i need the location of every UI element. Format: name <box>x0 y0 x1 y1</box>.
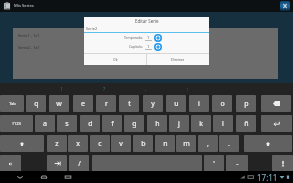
staticText: Temporada: <box>124 35 143 40</box>
button[interactable]: p <box>236 95 256 112</box>
button[interactable]: t <box>119 95 139 112</box>
button[interactable]: / <box>69 155 89 172</box>
button[interactable]: Tab <box>0 95 24 112</box>
button[interactable]: Increment Capítulo: <box>154 43 162 51</box>
staticText: q <box>34 99 39 109</box>
staticText: v <box>119 139 123 149</box>
button[interactable]: . <box>219 135 239 152</box>
button[interactable]: f <box>102 115 122 132</box>
staticText: n <box>163 139 168 149</box>
button[interactable]: ñ <box>236 115 256 132</box>
button[interactable]: Tab <box>47 155 67 172</box>
button[interactable]: n <box>155 135 175 152</box>
button[interactable]: ?123 <box>0 115 33 132</box>
button[interactable]: Enter <box>261 115 292 132</box>
button[interactable]: i <box>189 95 209 112</box>
button[interactable]: ! <box>41 83 83 95</box>
button[interactable]: s <box>57 115 77 132</box>
button[interactable]: o <box>212 95 232 112</box>
staticText: l <box>222 119 224 129</box>
staticText: Ok <box>113 57 118 62</box>
staticText: Tab <box>9 101 16 106</box>
staticText: 17:11 <box>257 172 278 183</box>
staticText: c <box>98 139 102 149</box>
button[interactable]: b <box>133 135 153 152</box>
staticText: Eliminar <box>171 57 185 62</box>
button[interactable]: Close <box>280 1 290 11</box>
button[interactable]: d <box>80 115 100 132</box>
button[interactable]: ? <box>83 83 125 95</box>
staticText: m <box>183 139 190 149</box>
button[interactable]: w <box>49 95 69 112</box>
staticText: b <box>141 139 146 149</box>
button[interactable]: Ctrl <box>0 155 21 172</box>
staticText: / <box>78 159 81 169</box>
staticText: i <box>198 99 200 109</box>
button[interactable]: ' <box>204 155 224 172</box>
button[interactable]: Shift <box>0 135 44 152</box>
button[interactable]: y <box>143 95 163 112</box>
button[interactable]: r <box>96 95 116 112</box>
staticText: Editar Serie <box>135 18 159 24</box>
staticText: Mis Series <box>14 3 34 9</box>
button[interactable]: z <box>47 135 67 152</box>
button[interactable]: Backspace <box>261 95 291 112</box>
button[interactable]: Serie2 <box>84 25 209 32</box>
staticText: , <box>207 139 209 149</box>
button[interactable]: e <box>73 95 93 112</box>
button[interactable]: Eliminar <box>147 54 209 65</box>
button[interactable]: Ok <box>84 54 146 65</box>
staticText: z <box>55 139 59 149</box>
button[interactable]: q <box>26 95 46 112</box>
button[interactable]: Serie1 - 1x1 <box>13 29 278 41</box>
staticText: o <box>220 99 225 109</box>
button[interactable]: c <box>90 135 110 152</box>
staticText: ?123 <box>12 121 21 126</box>
staticText: g <box>132 119 137 129</box>
staticText: w <box>56 99 62 109</box>
button[interactable]: Back <box>15 172 25 182</box>
button[interactable]: h <box>147 115 167 132</box>
staticText: Capítulo: <box>129 44 143 49</box>
staticText: e <box>81 99 85 109</box>
button[interactable]: a <box>35 115 55 132</box>
button[interactable]: g <box>124 115 144 132</box>
staticText: . <box>228 139 230 149</box>
button[interactable]: v <box>111 135 131 152</box>
button[interactable]: , <box>198 135 218 152</box>
staticText: 1 <box>147 35 150 40</box>
button[interactable]: k <box>191 115 211 132</box>
staticText: ? <box>103 86 106 93</box>
staticText: j <box>178 119 180 129</box>
button[interactable]: Recents <box>63 172 73 182</box>
button[interactable]: - <box>226 155 248 172</box>
staticText: ! <box>61 86 63 93</box>
staticText: f <box>111 119 114 129</box>
button[interactable]: Shift <box>244 135 292 152</box>
button[interactable]: l <box>213 115 233 132</box>
button[interactable]: m <box>176 135 196 152</box>
button[interactable]: Serie2 - 1x1 <box>13 41 278 53</box>
staticText: ' <box>213 159 215 169</box>
staticText: d <box>88 119 93 129</box>
staticText: 1 <box>147 44 150 49</box>
staticText: Serie2 <box>86 26 98 31</box>
button[interactable]: App icon <box>3 2 11 10</box>
button[interactable]: Voice input <box>272 155 293 172</box>
button[interactable]: j <box>169 115 189 132</box>
staticText: Serie1 - 1x1 <box>18 33 40 38</box>
staticText: , <box>145 86 147 93</box>
button[interactable]: u <box>166 95 186 112</box>
button[interactable]: Space <box>92 155 202 172</box>
button[interactable]: Increment Temporada: <box>154 34 162 42</box>
button[interactable]: x <box>68 135 88 152</box>
staticText: h <box>155 119 160 129</box>
staticText: Serie2 - 1x1 <box>18 45 40 50</box>
staticText: k <box>199 119 203 129</box>
button[interactable]: Home <box>39 172 49 182</box>
